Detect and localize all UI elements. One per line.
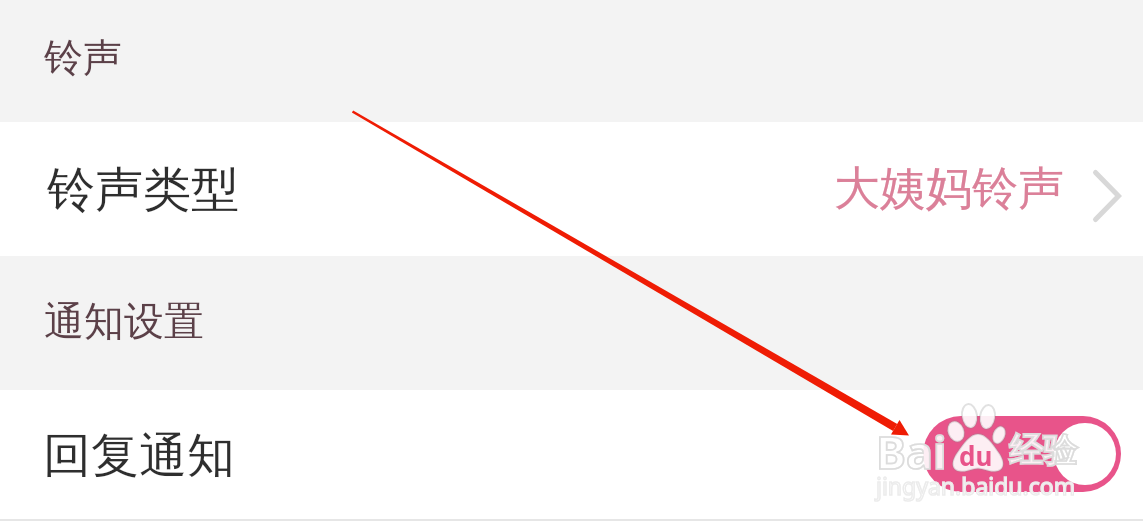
staticText: 回复通知	[43, 426, 235, 486]
button[interactable]: 铃声类型	[0, 122, 1143, 256]
button[interactable]: 回复通知开关	[923, 416, 1121, 492]
staticText: jingyan.baidu.com	[876, 470, 1076, 501]
staticText: Bai	[876, 421, 947, 482]
staticText: jingyan.baidu.com	[876, 470, 1076, 501]
staticText: 经验	[1009, 429, 1077, 472]
staticText: 通知设置	[44, 296, 204, 346]
button[interactable]: 回复通知	[0, 390, 1143, 518]
staticText: 大姨妈铃声	[834, 160, 1064, 218]
staticText: Bai	[876, 421, 947, 482]
staticText: 铃声	[44, 33, 122, 82]
staticText: 经验	[1009, 429, 1077, 472]
staticText: 铃声类型	[47, 160, 239, 220]
staticText: du	[959, 438, 993, 473]
